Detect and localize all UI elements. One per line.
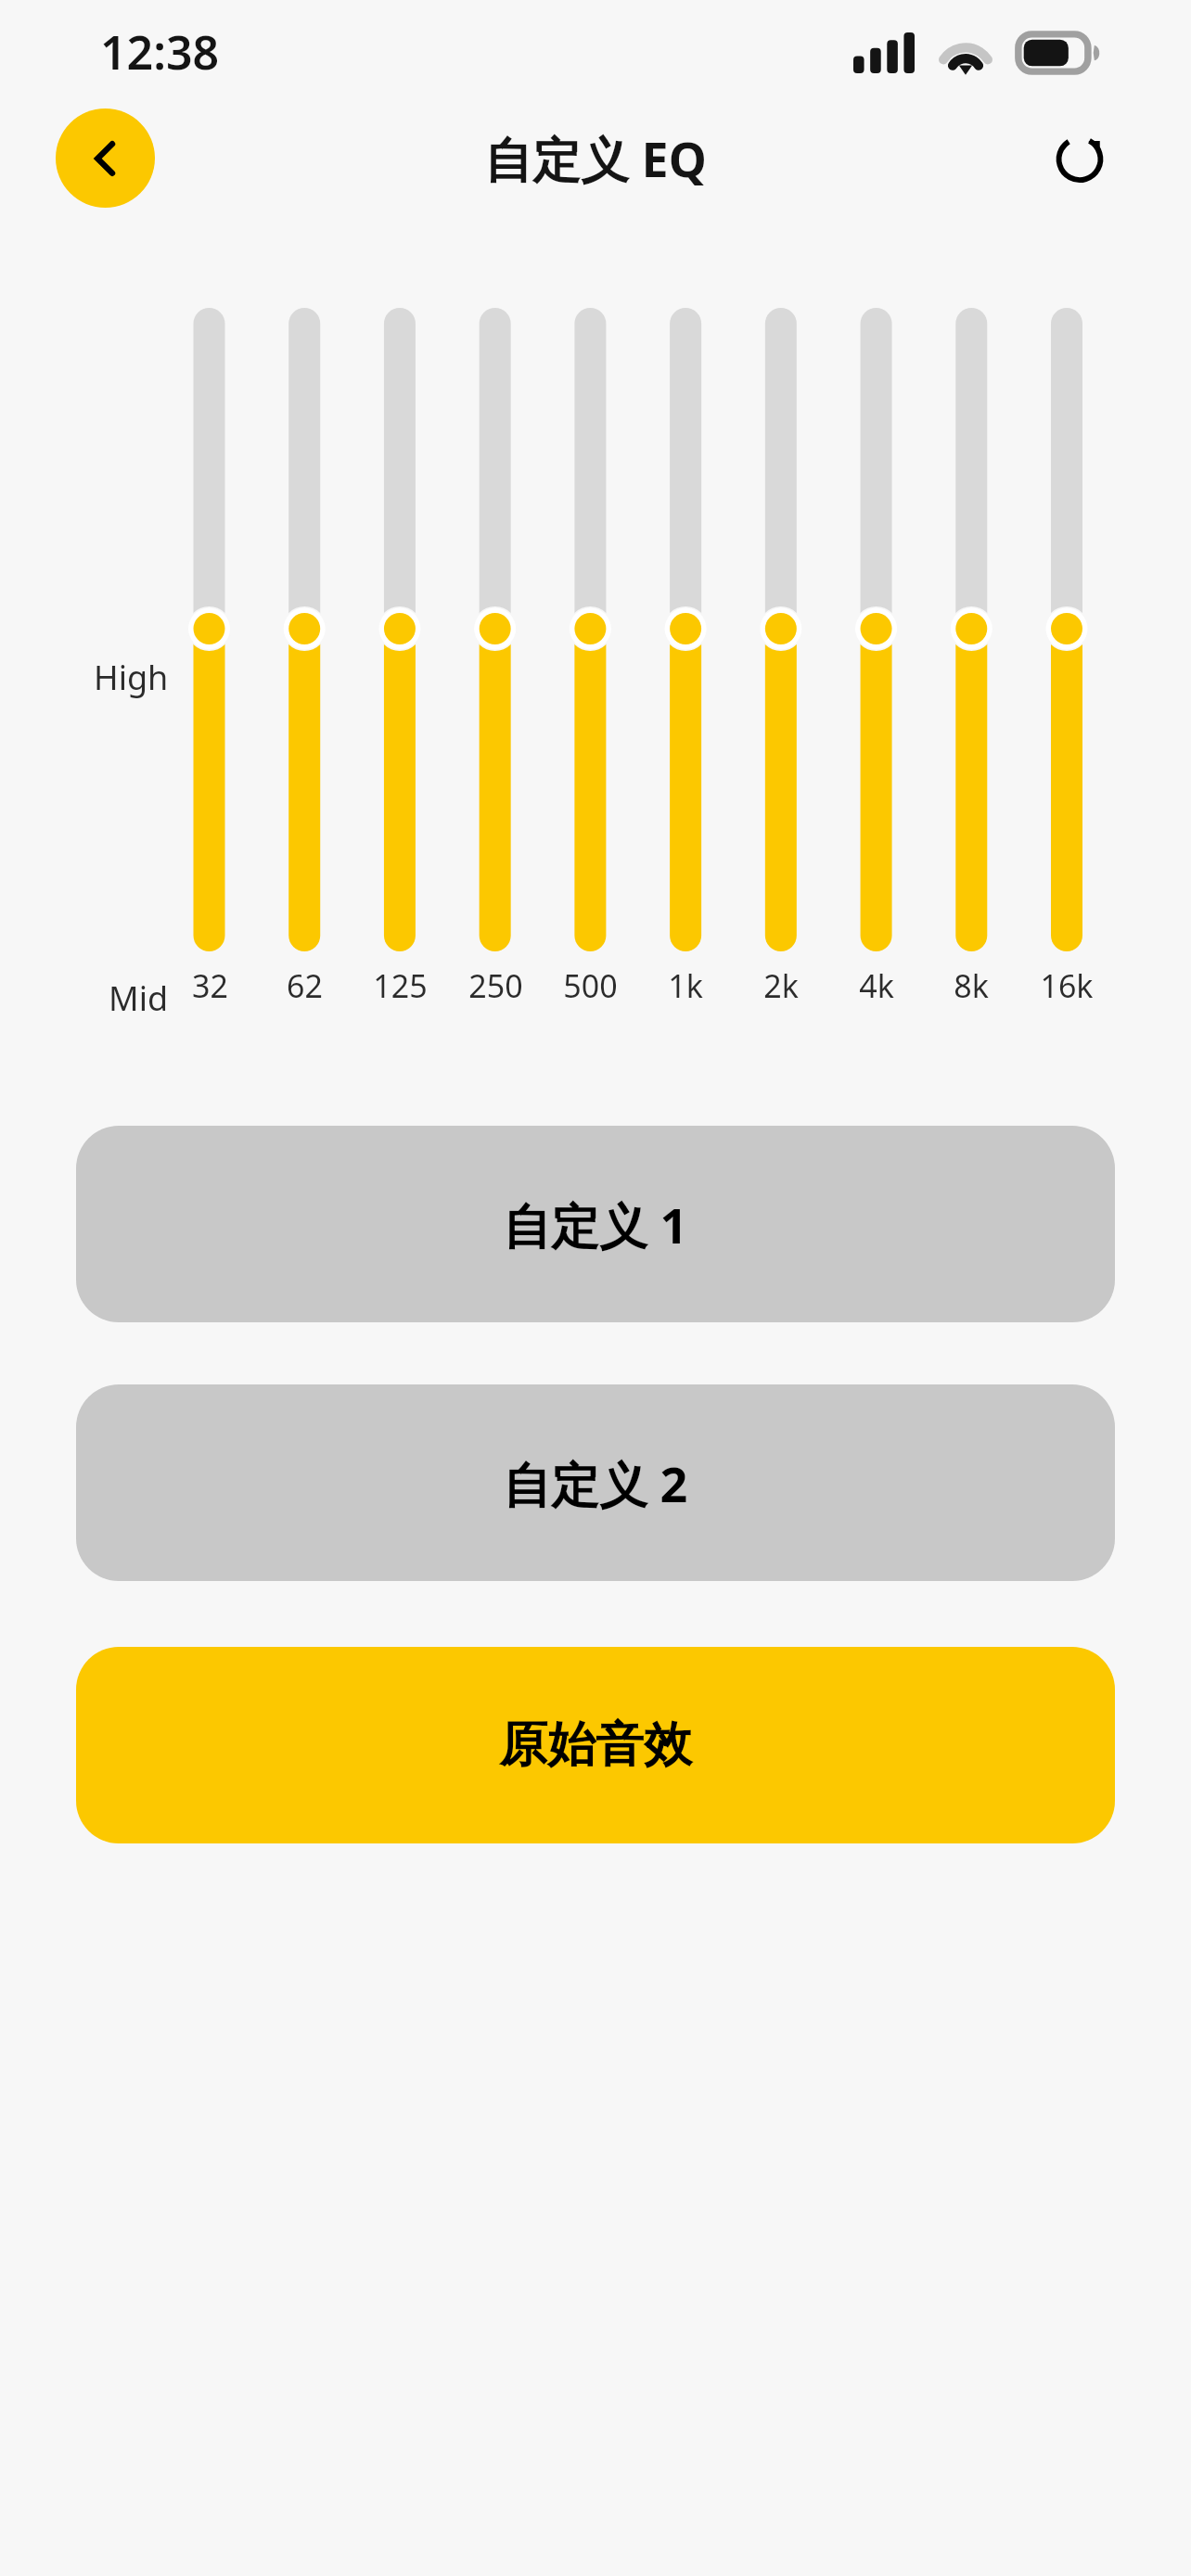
button[interactable]: 4k (821, 964, 932, 1020)
button[interactable]: 2k (725, 964, 837, 1020)
staticText: 2k (763, 964, 799, 1007)
button[interactable]: Back (56, 108, 155, 208)
staticText: 原始音效 (499, 1715, 692, 1776)
staticText: 4k (859, 964, 894, 1007)
button[interactable]: 125 (344, 964, 455, 1020)
button[interactable]: 自定义 1 (76, 1126, 1115, 1322)
button[interactable]: 原始音效 (76, 1647, 1115, 1843)
button[interactable]: 32 (154, 964, 265, 1020)
staticText: Mid (109, 976, 169, 1021)
staticText: 62 (287, 964, 323, 1007)
staticText: High (94, 655, 169, 700)
button[interactable]: Reset (1041, 119, 1119, 197)
staticText: 自定义 EQ (484, 125, 707, 191)
staticText: 16k (1040, 964, 1094, 1007)
staticText: 自定义 1 (503, 1192, 688, 1257)
staticText: 125 (373, 964, 428, 1007)
button[interactable]: 62 (249, 964, 360, 1020)
staticText: 32 (192, 964, 228, 1007)
staticText: 自定义 2 (503, 1450, 688, 1516)
button[interactable]: 16k (1011, 964, 1122, 1020)
staticText: 8k (954, 964, 989, 1007)
button[interactable]: 1k (630, 964, 741, 1020)
staticText: 1k (668, 964, 703, 1007)
button[interactable]: 500 (534, 964, 646, 1020)
staticText: 250 (468, 964, 523, 1007)
button[interactable]: 250 (440, 964, 551, 1020)
button[interactable]: 自定义 2 (76, 1384, 1115, 1581)
staticText: 500 (563, 964, 618, 1007)
staticText: 12:38 (100, 20, 220, 83)
button[interactable]: 8k (916, 964, 1027, 1020)
